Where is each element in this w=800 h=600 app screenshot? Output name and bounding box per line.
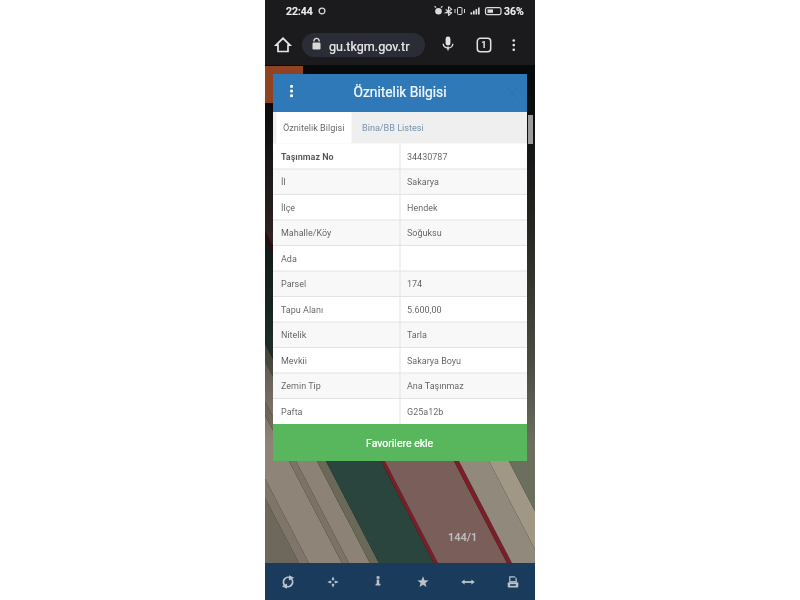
button[interactable]: Taşınmaz No [273,144,527,170]
button[interactable]: Zemin Tip [273,373,527,399]
button[interactable]: Favourites [400,563,445,600]
staticText: Mahalle/Köy [281,228,332,239]
staticText: İl [281,177,286,188]
staticText: gu.tkgm.gov.tr [329,39,410,54]
button[interactable]: Print [490,563,535,600]
button[interactable]: Favorilere ekle [273,424,527,461]
button[interactable]: More options [502,34,524,56]
staticText: Pafta [281,407,303,418]
button[interactable]: Information [355,563,400,600]
button[interactable]: Measure [445,563,490,600]
button[interactable]: Voice search [437,33,459,55]
button[interactable]: Pan map [310,563,355,600]
button[interactable]: Mevkii [273,348,527,374]
button[interactable]: Ada [273,246,527,272]
staticText: 1 [473,40,495,50]
button[interactable]: Öznitelik Bilgisi [276,112,351,144]
staticText: Öznitelik Bilgisi [283,123,345,134]
staticText: 22:44 [286,5,313,17]
staticText: 34430787 [407,152,448,163]
staticText: Tapu Alanı [281,305,324,316]
staticText: G25a12b [407,407,444,418]
staticText: Bina/BB Listesi [362,123,424,134]
staticText: Tarla [407,330,427,341]
staticText: 144/1 [448,531,478,544]
staticText: Nitelik [281,330,307,341]
staticText: Zemin Tip [281,381,321,392]
button[interactable]: gu.tkgm.gov.tr [302,33,425,57]
staticText: İlçe [281,203,296,214]
button[interactable]: Tapu Alanı [273,297,527,323]
staticText: Ada [281,254,297,265]
staticText: Parsel [281,279,307,290]
staticText: Sakarya [407,177,439,188]
button[interactable]: Nitelik [273,322,527,348]
button[interactable]: Mahalle/Köy [273,220,527,246]
button[interactable]: Bina/BB Listesi [351,112,434,144]
staticText: Hendek [407,203,438,214]
button[interactable]: Parsel [273,271,527,297]
staticText: 36% [504,5,524,17]
button[interactable]: Refresh [265,563,310,600]
staticText: Mevkii [281,356,307,367]
staticText: Taşınmaz No [281,152,334,163]
button[interactable]: Home [270,31,296,57]
staticText: 5.600,00 [407,305,442,316]
staticText: Favorilere ekle [366,437,434,449]
staticText: Ana Taşınmaz [407,381,464,392]
button[interactable]: Pafta [273,399,527,425]
staticText: Soğuksu [407,228,442,239]
button[interactable]: İlçe [273,195,527,221]
button[interactable]: Menu [279,81,303,105]
staticText: Sakarya Boyu [407,356,462,367]
button[interactable]: Tabs [473,34,495,56]
staticText: 174 [407,279,423,290]
staticText: Öznitelik Bilgisi [273,84,527,100]
button[interactable]: İl [273,169,527,195]
